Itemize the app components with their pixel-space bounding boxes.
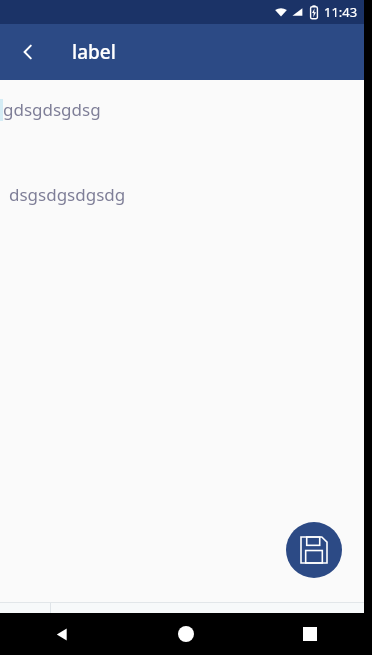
- button[interactable]: Recent apps: [248, 613, 372, 655]
- button[interactable]: More: [335, 603, 359, 655]
- staticText: label: [72, 39, 116, 65]
- staticText: dsgsdgsdgsdg: [9, 183, 126, 206]
- staticText: 11:43: [324, 3, 358, 21]
- button[interactable]: Quote: [151, 603, 197, 655]
- button[interactable]: Link: [289, 603, 335, 655]
- button[interactable]: Back: [6, 30, 50, 74]
- button[interactable]: Bullet list: [105, 603, 151, 655]
- button[interactable]: Italic: [243, 603, 289, 655]
- staticText: gdsgdsgdsg: [3, 98, 101, 121]
- button[interactable]: Heading: [63, 603, 105, 655]
- button[interactable]: Bold: [197, 603, 243, 655]
- button[interactable]: Save: [286, 522, 342, 578]
- button[interactable]: Home: [124, 613, 248, 655]
- button[interactable]: Back: [0, 613, 124, 655]
- button[interactable]: Insert: [0, 603, 50, 655]
